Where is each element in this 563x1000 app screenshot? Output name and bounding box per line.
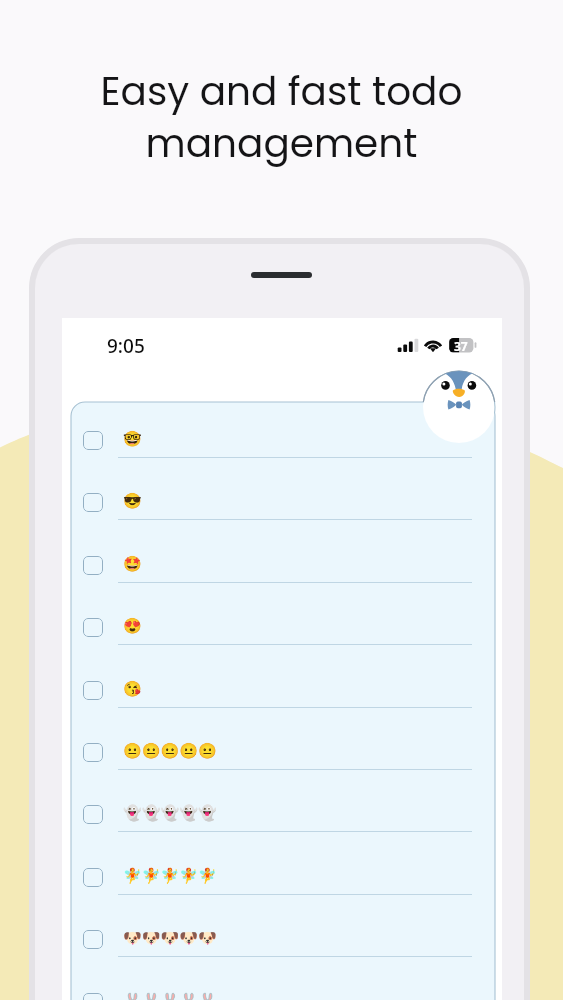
staticText: 😐😐😐😐😐 bbox=[123, 742, 217, 760]
staticText: 😘 bbox=[123, 680, 142, 698]
staticText: 🤩 bbox=[123, 555, 142, 573]
staticText: 😍 bbox=[123, 617, 142, 635]
staticText: 🧚🧚🧚🧚🧚 bbox=[123, 867, 217, 885]
button[interactable]: 🐶🐶🐶🐶🐶 bbox=[74, 918, 514, 980]
button[interactable]: 😘 bbox=[74, 669, 514, 731]
button[interactable]: 👻👻👻👻👻 bbox=[74, 793, 514, 855]
staticText: 👻👻👻👻👻 bbox=[123, 804, 217, 822]
staticText: 9:05 bbox=[107, 333, 145, 359]
staticText: 🐰🐰🐰🐰🐰 bbox=[123, 992, 217, 1000]
button[interactable]: 🐰🐰🐰🐰🐰 bbox=[74, 981, 514, 1000]
button[interactable]: 🧚🧚🧚🧚🧚 bbox=[74, 856, 514, 918]
button[interactable]: 😎 bbox=[74, 481, 514, 543]
staticText: 37 bbox=[454, 338, 468, 353]
staticText: 🤓 bbox=[123, 430, 142, 448]
staticText: 🐶🐶🐶🐶🐶 bbox=[123, 929, 217, 947]
button[interactable]: 🤩 bbox=[74, 544, 514, 606]
button[interactable]: 😍 bbox=[74, 606, 514, 668]
button[interactable]: 😐😐😐😐😐 bbox=[74, 731, 514, 793]
staticText: Easy and fast todo management bbox=[0, 64, 563, 171]
staticText: 😎 bbox=[123, 492, 142, 510]
button[interactable]: 🤓 bbox=[74, 419, 514, 481]
